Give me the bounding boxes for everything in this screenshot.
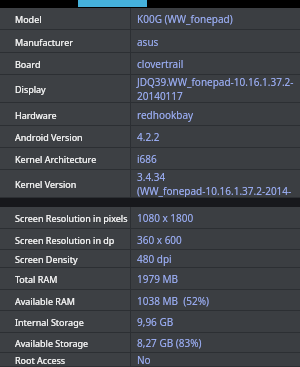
staticText: JDQ39.WW_fonepad-10.16.1.37.2- — [137, 75, 294, 89]
staticText: Internal Storage — [15, 316, 84, 328]
button[interactable]: Screen Resolution in pixels — [0, 207, 300, 229]
staticText: 4.2.2 — [137, 130, 160, 144]
staticText: 9,96 GB — [137, 315, 174, 329]
button[interactable]: Manufacturer — [0, 30, 300, 53]
staticText: Android Version — [15, 131, 83, 143]
button[interactable]: Total RAM — [0, 268, 300, 290]
button[interactable]: Root Access — [0, 353, 300, 367]
staticText: redhookbay — [137, 108, 194, 122]
staticText: Hardware — [15, 109, 57, 121]
staticText: Available Storage — [15, 337, 89, 349]
staticText: Screen Resolution in dp — [15, 234, 115, 246]
button[interactable]: Android Version — [0, 126, 300, 148]
button[interactable]: Screen Density — [0, 250, 300, 268]
button[interactable]: Hardware — [0, 103, 300, 126]
staticText: No — [137, 353, 151, 367]
staticText: Model — [15, 13, 42, 25]
staticText: Total RAM — [15, 273, 58, 285]
staticText: Kernel Version — [15, 178, 77, 190]
button[interactable]: Model — [0, 8, 300, 30]
staticText: Manufacturer — [15, 36, 73, 48]
button[interactable]: Available RAM — [0, 290, 300, 311]
staticText: 1038 MB (52%) — [137, 294, 209, 308]
staticText: 1979 MB — [137, 272, 179, 286]
staticText: Available RAM — [15, 295, 75, 307]
button[interactable]: Board — [0, 53, 300, 75]
button[interactable]: Screen Resolution in dp — [0, 229, 300, 250]
staticText: 3.4.34 — [137, 170, 166, 184]
button[interactable]: Kernel Version — [0, 170, 300, 198]
staticText: Screen Density — [15, 253, 78, 265]
staticText: Kernel Architecture — [15, 153, 97, 165]
staticText: 1080 x 1800 — [137, 211, 194, 225]
staticText: asus — [137, 35, 159, 49]
staticText: 360 x 600 — [137, 233, 182, 247]
button[interactable]: Available Storage — [0, 333, 300, 353]
staticText: Board — [15, 58, 41, 70]
staticText: 20140117 — [137, 89, 183, 103]
button[interactable]: Display — [0, 75, 300, 103]
button[interactable]: Internal Storage — [0, 311, 300, 333]
staticText: (WW_fonepad-10.16.1.37.2-2014- — [137, 184, 292, 198]
staticText: 8,27 GB (83%) — [137, 336, 202, 350]
button[interactable]: Kernel Architecture — [0, 148, 300, 170]
staticText: i686 — [137, 152, 157, 166]
staticText: Root Access — [15, 354, 66, 366]
staticText: K00G (WW_fonepad) — [137, 12, 233, 26]
staticText: 480 dpi — [137, 252, 172, 266]
staticText: Screen Resolution in pixels — [15, 212, 128, 224]
staticText: Display — [15, 83, 46, 95]
staticText: clovertrail — [137, 57, 184, 71]
